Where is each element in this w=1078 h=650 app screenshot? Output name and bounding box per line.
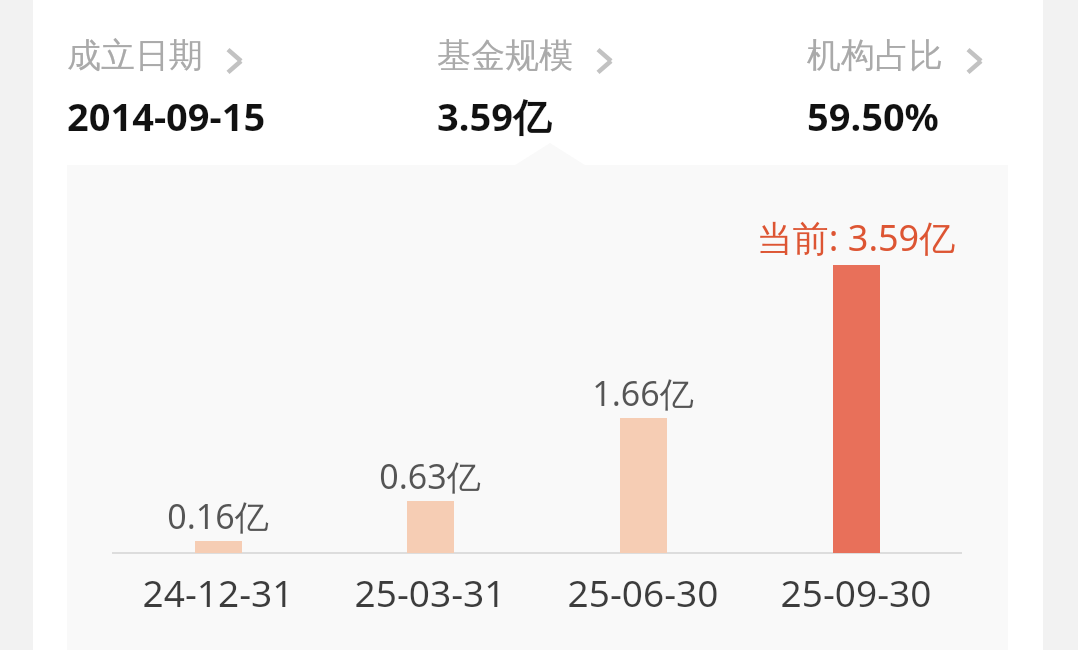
other: More: [225, 46, 245, 76]
staticText: 59.50%: [807, 90, 939, 142]
staticText: 0.63亿: [320, 453, 540, 499]
staticText: 0.16亿: [108, 493, 328, 539]
staticText: 3.59亿: [437, 90, 551, 142]
staticText: 机构占比: [807, 34, 943, 77]
other: More: [595, 46, 615, 76]
button[interactable]: 基金规模: [437, 22, 667, 142]
button[interactable]: 成立日期: [67, 22, 297, 142]
staticText: 24-12-31: [88, 567, 348, 617]
staticText: 成立日期: [67, 34, 203, 77]
staticText: 25-06-30: [513, 567, 773, 617]
staticText: 25-09-30: [726, 567, 986, 617]
staticText: 当前: 3.59亿: [656, 213, 1056, 262]
other: More: [965, 46, 985, 76]
staticText: 2014-09-15: [67, 90, 266, 142]
staticText: 基金规模: [437, 34, 573, 77]
staticText: 25-03-31: [300, 567, 560, 617]
button[interactable]: 机构占比: [807, 22, 1037, 142]
staticText: 1.66亿: [533, 370, 753, 416]
